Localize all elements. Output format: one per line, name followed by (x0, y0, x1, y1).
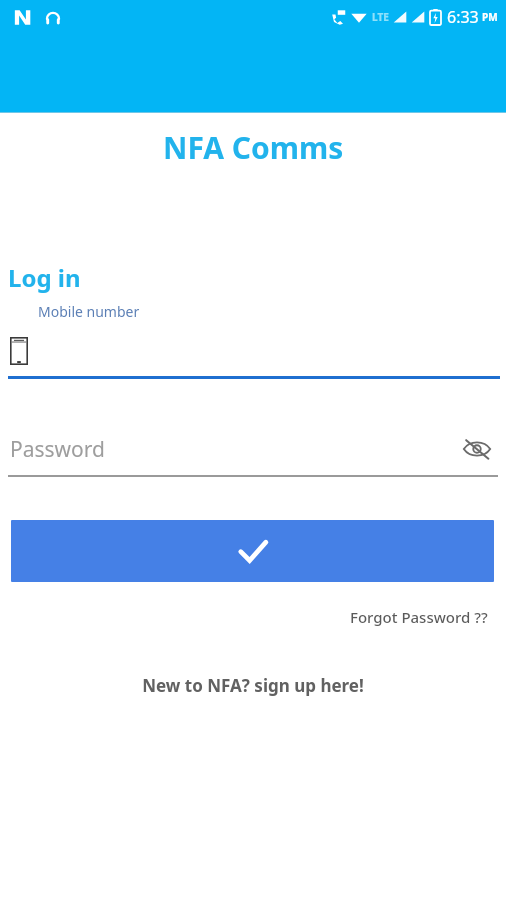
staticText: New to NFA? sign up here! (142, 674, 364, 697)
button[interactable]: New to NFA? sign up here! (142, 674, 364, 697)
staticText: Log in (8, 261, 81, 294)
staticText: NFA Comms (163, 127, 344, 168)
button[interactable]: Show password (462, 438, 492, 460)
button[interactable]: Submit (11, 520, 494, 582)
staticText: PM (482, 10, 498, 24)
button[interactable]: Mobile number field (0, 335, 506, 379)
staticText: Forgot Password ?? (350, 607, 488, 627)
staticText: Password (10, 435, 105, 464)
button[interactable]: Forgot Password ?? (350, 607, 488, 627)
button[interactable]: Password field (0, 429, 506, 477)
staticText: 6:33 (447, 6, 479, 28)
staticText: Mobile number (38, 302, 140, 321)
staticText: LTE (372, 10, 389, 24)
